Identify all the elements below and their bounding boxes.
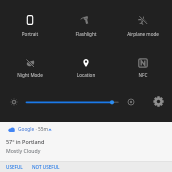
staticText: Night Mode — [2, 72, 58, 78]
button[interactable] — [115, 7, 171, 37]
button[interactable]: Google · 55m — [0, 122, 172, 172]
button[interactable] — [2, 50, 58, 80]
button[interactable] — [2, 7, 58, 37]
staticText: 57° in Portland — [6, 138, 45, 145]
staticText: Location — [58, 72, 114, 78]
button[interactable]: USEFUL — [6, 164, 23, 170]
button[interactable] — [115, 50, 171, 80]
button[interactable]: Brightness slider — [22, 96, 122, 109]
button[interactable] — [58, 7, 114, 37]
staticText: NOT USEFUL — [32, 164, 60, 170]
staticText: Airplane mode — [115, 31, 171, 37]
staticText: NFC — [115, 72, 171, 78]
button[interactable]: Settings — [153, 96, 164, 107]
button[interactable]: NOT USEFUL — [32, 164, 60, 170]
staticText: Portrait — [2, 31, 58, 37]
button[interactable]: Brightness — [9, 97, 19, 107]
button[interactable] — [58, 50, 114, 80]
staticText: Flashlight — [58, 31, 114, 37]
staticText: Mostly Cloudy — [6, 147, 41, 154]
staticText: Google · 55m — [18, 126, 48, 133]
button[interactable]: Auto brightness — [126, 97, 136, 107]
staticText: USEFUL — [6, 164, 23, 170]
